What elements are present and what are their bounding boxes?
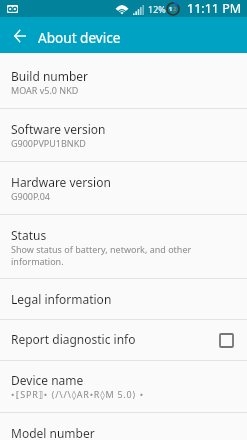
staticText: Show status of battery, network, and oth… (11, 243, 192, 255)
staticText: Device name (11, 372, 84, 388)
button[interactable]: Software version (0, 109, 247, 161)
staticText: •⟦SPR⟧• ⟨/\/\◊AR•R◊M 5.0⟩ • (11, 388, 144, 400)
staticText: Software version (11, 121, 106, 137)
button[interactable]: Build number (0, 53, 247, 108)
staticText: About device (38, 28, 121, 47)
staticText: Legal information (11, 291, 112, 307)
button[interactable]: Legal information (0, 279, 247, 319)
staticText: G900PVPU1BNKD (11, 137, 86, 149)
staticText: Report diagnostic info (11, 331, 136, 347)
staticText: Model number (11, 425, 95, 440)
button[interactable]: Back (2, 18, 38, 54)
staticText: information. (11, 255, 64, 267)
button[interactable]: Model number (0, 413, 247, 440)
staticText: Build number (11, 68, 89, 84)
button[interactable]: Status (0, 215, 247, 278)
staticText: Hardware version (11, 174, 111, 190)
staticText: G900P.04 (11, 190, 50, 202)
staticText: 11:11 PM (187, 0, 242, 17)
staticText: 1 (169, 5, 173, 13)
staticText: MOAR v5.0 NKD (11, 84, 79, 96)
staticText: Status (11, 227, 47, 243)
button[interactable]: Device name (0, 361, 247, 412)
button[interactable]: Report diagnostic info (0, 320, 247, 360)
staticText: 12% (148, 3, 166, 15)
staticText: 2 (173, 5, 177, 13)
button[interactable]: Hardware version (0, 162, 247, 214)
